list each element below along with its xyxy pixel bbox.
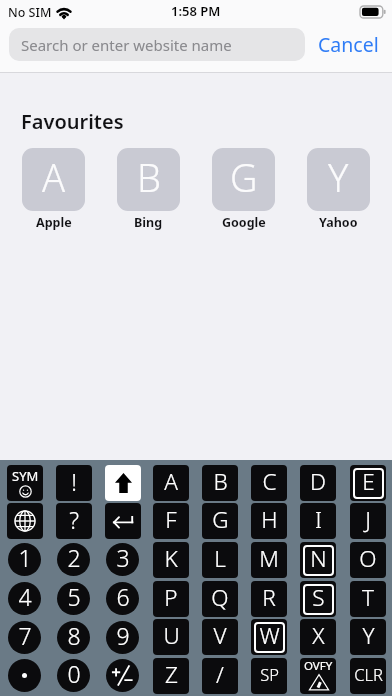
button[interactable]: G	[202, 503, 238, 539]
staticText: CLR	[354, 663, 383, 685]
button[interactable]: I	[300, 503, 336, 539]
button[interactable]: 1	[8, 543, 41, 576]
staticText: T	[362, 582, 374, 613]
staticText: 9	[116, 621, 130, 651]
button[interactable]: /	[202, 658, 238, 694]
button[interactable]: Symbols	[7, 465, 43, 501]
button[interactable]: Z	[153, 658, 189, 694]
button[interactable]: Overflow	[300, 658, 336, 694]
button[interactable]: D	[300, 465, 336, 501]
button[interactable]: J	[350, 503, 386, 539]
button[interactable]: Y	[350, 619, 386, 655]
staticText: L	[214, 543, 226, 574]
staticText: SP	[260, 663, 279, 685]
button[interactable]: 2	[57, 543, 90, 576]
button[interactable]: H	[251, 503, 287, 539]
staticText: S	[312, 582, 325, 613]
button[interactable]: ?	[56, 503, 92, 539]
staticText: W	[259, 620, 280, 651]
staticText: A	[164, 466, 178, 497]
staticText: F	[165, 504, 177, 535]
button[interactable]: 3	[106, 543, 139, 576]
staticText: 4	[18, 582, 32, 612]
button[interactable]: 5	[57, 582, 90, 615]
staticText: !	[71, 466, 77, 497]
staticText: 0	[67, 659, 81, 689]
button[interactable]: CLR	[350, 658, 386, 694]
button[interactable]: A	[22, 148, 85, 231]
button[interactable]: Enter	[105, 503, 141, 539]
button[interactable]: Cancel	[309, 28, 388, 61]
staticText: U	[163, 620, 180, 651]
button[interactable]: C	[251, 465, 287, 501]
button[interactable]: Search or enter website name	[9, 28, 305, 61]
staticText: J	[365, 504, 371, 535]
button[interactable]: 7	[8, 621, 41, 654]
button[interactable]: N	[300, 542, 336, 578]
staticText: X	[312, 620, 325, 651]
staticText: E	[362, 466, 375, 497]
button[interactable]: Y	[307, 148, 370, 231]
staticText: A	[42, 151, 66, 203]
staticText: Google	[222, 214, 266, 231]
button[interactable]: Shift	[105, 465, 141, 501]
button[interactable]	[106, 659, 139, 692]
staticText: SYM	[12, 467, 39, 485]
button[interactable]: SP	[251, 658, 287, 694]
button[interactable]	[8, 659, 41, 692]
button[interactable]: V	[202, 619, 238, 655]
button[interactable]: X	[300, 619, 336, 655]
staticText: C	[262, 466, 277, 497]
button[interactable]: 0	[57, 659, 90, 692]
button[interactable]: G	[212, 148, 275, 231]
staticText: Y	[362, 620, 375, 651]
staticText: 1	[18, 543, 32, 573]
staticText: Z	[165, 659, 178, 690]
staticText: No SIM	[8, 4, 52, 21]
button[interactable]: T	[350, 581, 386, 617]
button[interactable]: !	[56, 465, 92, 501]
button[interactable]: Q	[202, 581, 238, 617]
staticText: H	[261, 504, 278, 535]
button[interactable]: F	[153, 503, 189, 539]
button[interactable]: P	[153, 581, 189, 617]
staticText: G	[212, 504, 229, 535]
staticText: 2	[67, 543, 81, 573]
staticText: ?	[69, 504, 79, 535]
button[interactable]: K	[153, 542, 189, 578]
staticText: Q	[211, 582, 229, 613]
button[interactable]: 9	[106, 621, 139, 654]
staticText: P	[164, 582, 178, 613]
button[interactable]: 6	[106, 582, 139, 615]
button[interactable]: E	[350, 465, 386, 501]
button[interactable]: U	[153, 619, 189, 655]
staticText: B	[137, 151, 161, 203]
button[interactable]: B	[117, 148, 180, 231]
staticText: Y	[328, 151, 349, 203]
button[interactable]: S	[300, 581, 336, 617]
staticText: Search or enter website name	[21, 35, 232, 55]
staticText: K	[164, 543, 178, 574]
staticText: 7	[18, 621, 32, 651]
button[interactable]: A	[153, 465, 189, 501]
staticText: Favourites	[21, 108, 124, 135]
button[interactable]: 8	[57, 621, 90, 654]
staticText: Cancel	[318, 31, 379, 58]
staticText: N	[310, 543, 327, 574]
button[interactable]: O	[350, 542, 386, 578]
button[interactable]: B	[202, 465, 238, 501]
button[interactable]: L	[202, 542, 238, 578]
button[interactable]: W	[251, 619, 287, 655]
button[interactable]: Language	[7, 503, 43, 539]
staticText: D	[310, 466, 326, 497]
staticText: 1:58 PM	[171, 2, 221, 20]
button[interactable]: R	[251, 581, 287, 617]
staticText: I	[315, 504, 322, 535]
staticText: 3	[116, 543, 130, 573]
button[interactable]: 4	[8, 582, 41, 615]
staticText: V	[213, 620, 227, 651]
staticText: M	[259, 543, 279, 574]
staticText: Yahoo	[319, 214, 358, 231]
staticText: OVFY	[304, 658, 333, 674]
button[interactable]: M	[251, 542, 287, 578]
